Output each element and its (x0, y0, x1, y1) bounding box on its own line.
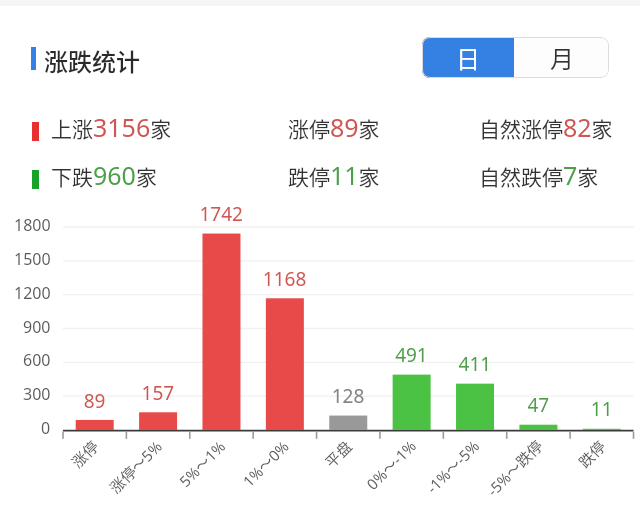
staticText: 涨跌统计 (44, 43, 140, 78)
staticText: 跌停11家 (288, 158, 380, 192)
staticText: 涨停89家 (288, 110, 380, 144)
staticText: 月 (550, 40, 574, 75)
staticText: 自然跌停7家 (479, 158, 599, 192)
staticText: 自然涨停82家 (479, 110, 613, 144)
staticText: 日 (456, 40, 480, 75)
button[interactable]: 月 (514, 37, 609, 78)
button[interactable]: 日 (422, 37, 514, 78)
staticText: 上涨3156家 (51, 110, 172, 144)
staticText: 下跌960家 (51, 158, 157, 192)
